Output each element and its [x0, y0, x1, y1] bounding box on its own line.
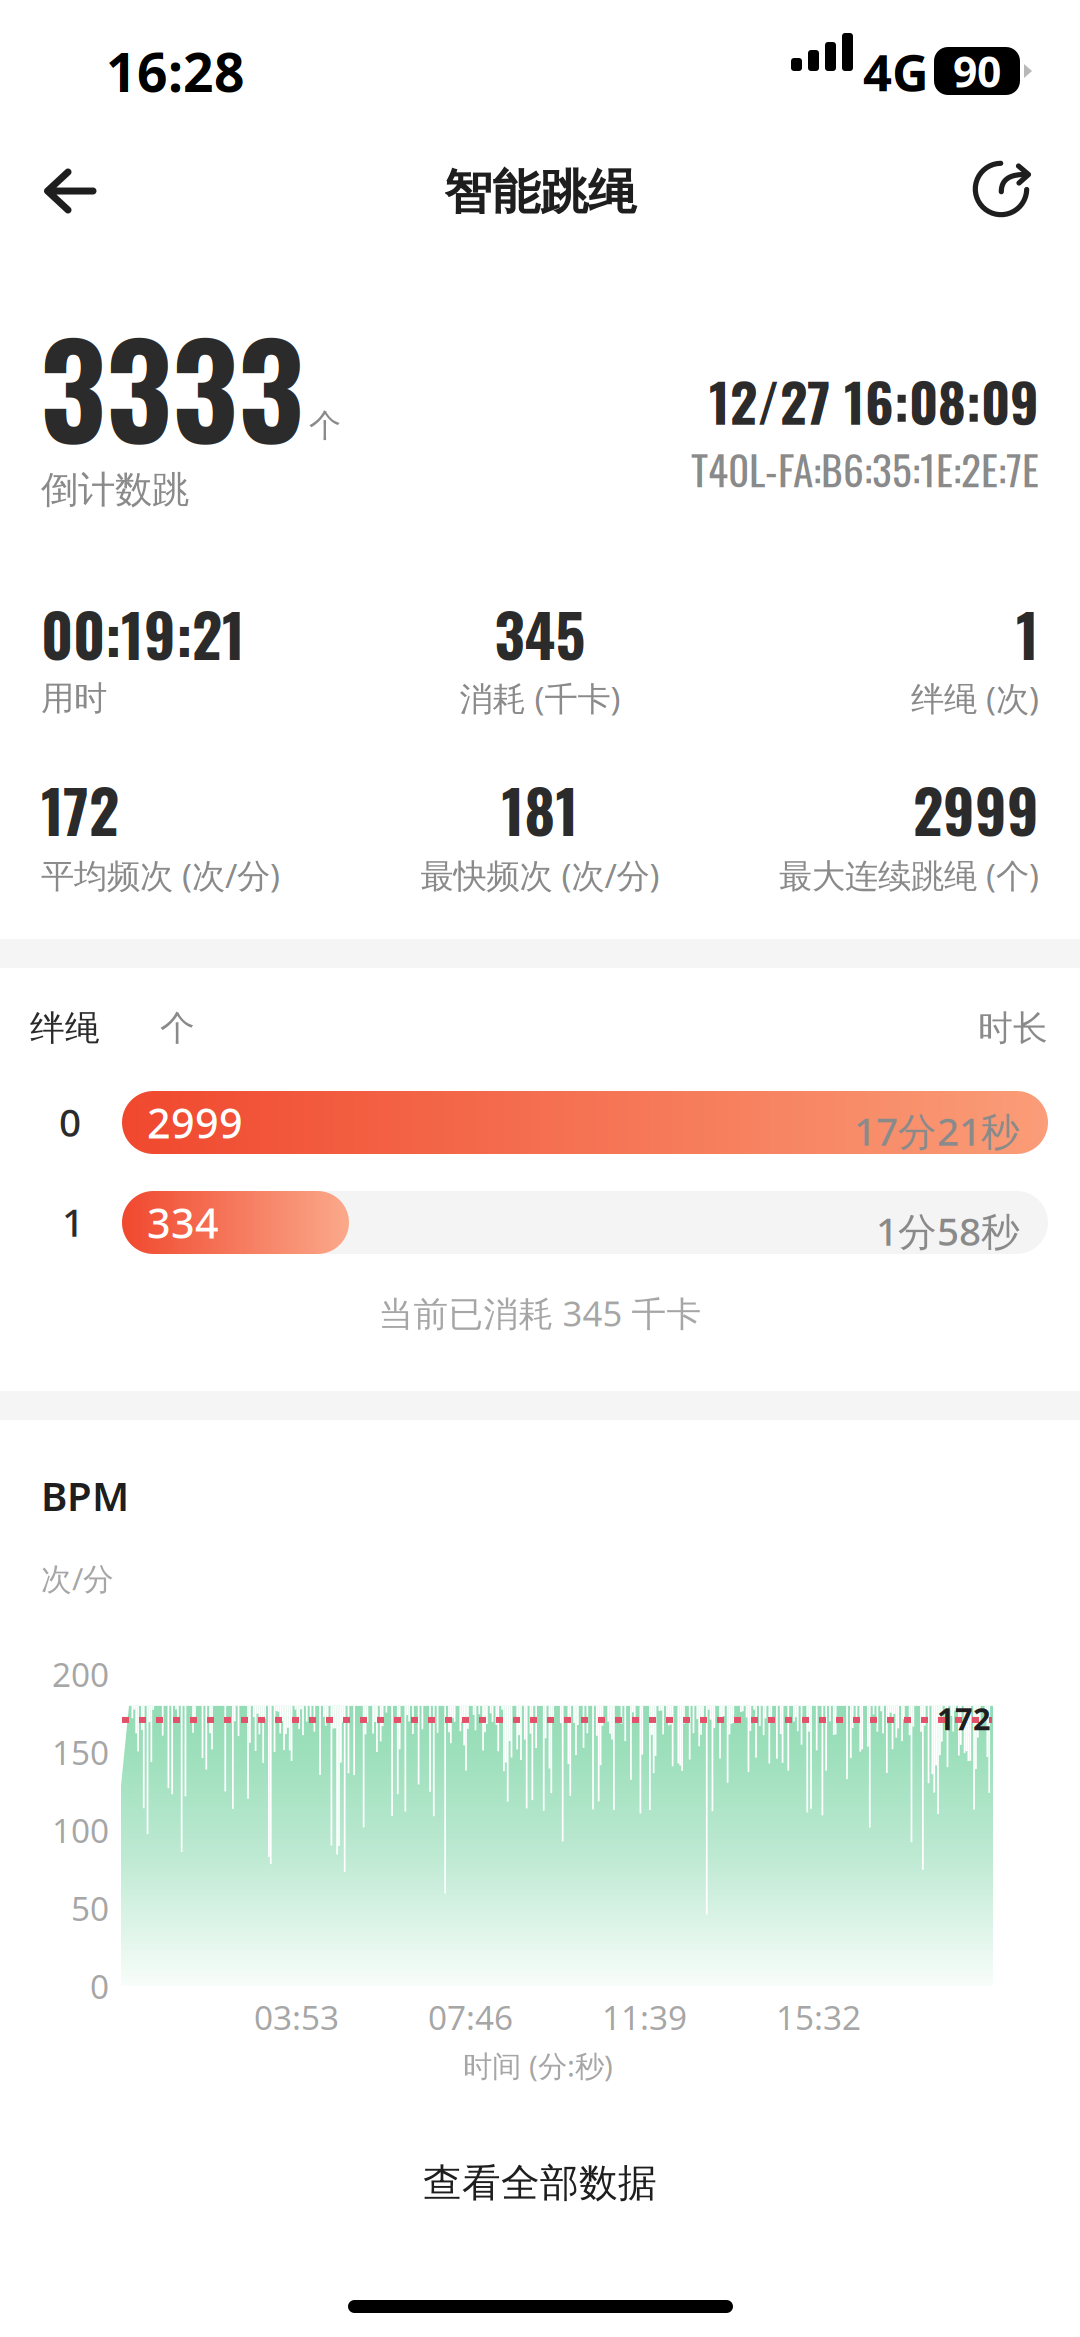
staticText: 1	[62, 1196, 84, 1247]
staticText: 3333	[40, 290, 304, 480]
staticText: 172	[41, 766, 119, 853]
staticText: T40L-FA:B6:35:1E:2E:7E	[691, 438, 1039, 499]
staticText: 个	[160, 1007, 195, 1050]
staticText: 倒计数跳	[41, 467, 189, 513]
staticText: 172	[937, 1698, 991, 1739]
staticText: 查看全部数据	[423, 2159, 657, 2207]
button[interactable]: 分享	[946, 133, 1062, 247]
staticText: 当前已消耗 345 千卡	[378, 1290, 701, 1336]
staticText: 1分58秒	[876, 1205, 1020, 1256]
staticText: 03:53	[254, 1995, 339, 2039]
staticText: 90	[953, 43, 1001, 99]
staticText: 0	[59, 1096, 81, 1147]
staticText: 消耗 (千卡)	[459, 676, 620, 720]
staticText: 智能跳绳	[444, 163, 636, 222]
staticText: 0	[90, 1964, 109, 2008]
button[interactable]: 返回	[18, 143, 122, 239]
staticText: BPM	[41, 1469, 129, 1522]
staticText: 1	[1016, 590, 1039, 677]
staticText: 17分21秒	[854, 1105, 1020, 1156]
staticText: 345	[494, 590, 585, 677]
button[interactable]: 查看全部数据	[0, 2145, 1080, 2221]
staticText: 181	[501, 766, 578, 853]
staticText: 绊绳 (次)	[911, 676, 1039, 720]
staticText: 最快频次 (次/分)	[420, 853, 659, 897]
staticText: 绊绳	[30, 1007, 100, 1050]
staticText: 平均频次 (次/分)	[41, 853, 280, 897]
staticText: 个	[309, 406, 341, 445]
staticText: 150	[52, 1730, 109, 1774]
staticText: 00:19:21	[41, 590, 245, 677]
staticText: 16:28	[106, 36, 245, 107]
staticText: 200	[52, 1652, 109, 1696]
staticText: 07:46	[428, 1995, 513, 2039]
staticText: 时长	[978, 1007, 1048, 1050]
staticText: 334	[147, 1195, 219, 1250]
staticText: 4G	[863, 38, 929, 105]
staticText: 15:32	[776, 1995, 861, 2039]
staticText: 次/分	[41, 1558, 114, 1599]
staticText: 时间 (分:秒)	[463, 2046, 613, 2085]
staticText: 用时	[41, 678, 107, 719]
staticText: 100	[52, 1808, 109, 1852]
staticText: 12/27 16:08:09	[709, 361, 1039, 440]
staticText: 2999	[913, 766, 1039, 853]
staticText: 2999	[147, 1095, 243, 1150]
staticText: 11:39	[602, 1995, 687, 2039]
staticText: 最大连续跳绳 (个)	[779, 853, 1039, 897]
staticText: 50	[71, 1886, 109, 1930]
